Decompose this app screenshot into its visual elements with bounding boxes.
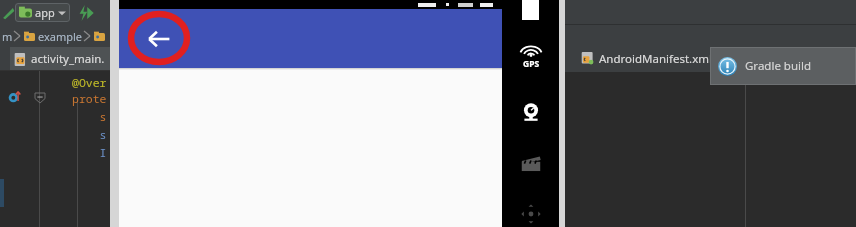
button[interactable]: Camera bbox=[517, 98, 545, 126]
staticText: @Over bbox=[72, 75, 107, 91]
button[interactable]: app bbox=[15, 3, 70, 22]
staticText: m bbox=[2, 29, 13, 44]
button[interactable]: Navigate up bbox=[137, 17, 181, 61]
staticText: GPS bbox=[523, 58, 540, 70]
staticText: example bbox=[38, 29, 83, 44]
staticText: s bbox=[72, 127, 107, 143]
staticText: app bbox=[35, 5, 55, 20]
staticText: activity_main.x bbox=[31, 51, 106, 67]
button[interactable]: activity_main.x bbox=[10, 47, 110, 71]
staticText: prote bbox=[72, 91, 107, 107]
button[interactable]: D-pad bbox=[516, 200, 546, 227]
staticText: Gradle build finished bbox=[745, 58, 850, 74]
button[interactable]: Gradle build finished bbox=[710, 47, 856, 85]
button[interactable]: Location bbox=[519, 42, 543, 72]
button[interactable]: Record screen bbox=[517, 150, 545, 178]
staticText: AndroidManifest.xml bbox=[599, 51, 712, 67]
staticText: I bbox=[72, 145, 107, 161]
button[interactable]: AndroidManifest.xml bbox=[577, 46, 716, 72]
staticText: s bbox=[72, 109, 107, 125]
